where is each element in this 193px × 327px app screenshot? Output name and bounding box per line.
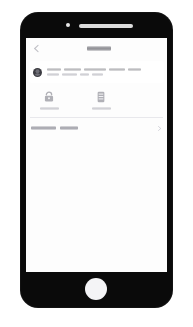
button[interactable]: Documents xyxy=(86,89,116,111)
button[interactable]: Back xyxy=(28,40,44,56)
button[interactable]: Home xyxy=(85,278,107,300)
button[interactable]: Security xyxy=(34,89,64,111)
button[interactable] xyxy=(26,121,167,135)
button[interactable] xyxy=(29,61,164,83)
